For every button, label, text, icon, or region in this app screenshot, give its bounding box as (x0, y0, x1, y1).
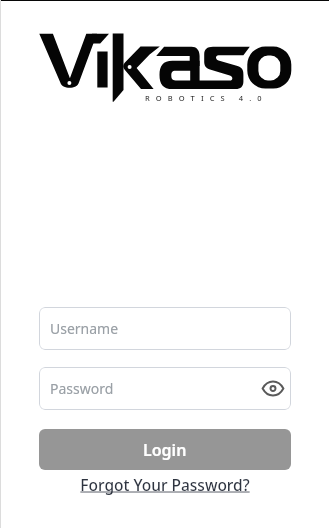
staticText: Username (50, 319, 119, 338)
button[interactable]: Username (39, 307, 291, 350)
staticText: Login (143, 439, 187, 461)
button[interactable]: Password (39, 367, 291, 410)
button[interactable]: Show password (261, 377, 284, 400)
staticText: Password (50, 379, 114, 398)
button[interactable]: Login (39, 429, 291, 470)
button[interactable]: Forgot Your Password? (0, 473, 329, 495)
staticText: ROBOTICS 4.0 (145, 93, 268, 103)
staticText: Forgot Your Password? (80, 474, 250, 495)
